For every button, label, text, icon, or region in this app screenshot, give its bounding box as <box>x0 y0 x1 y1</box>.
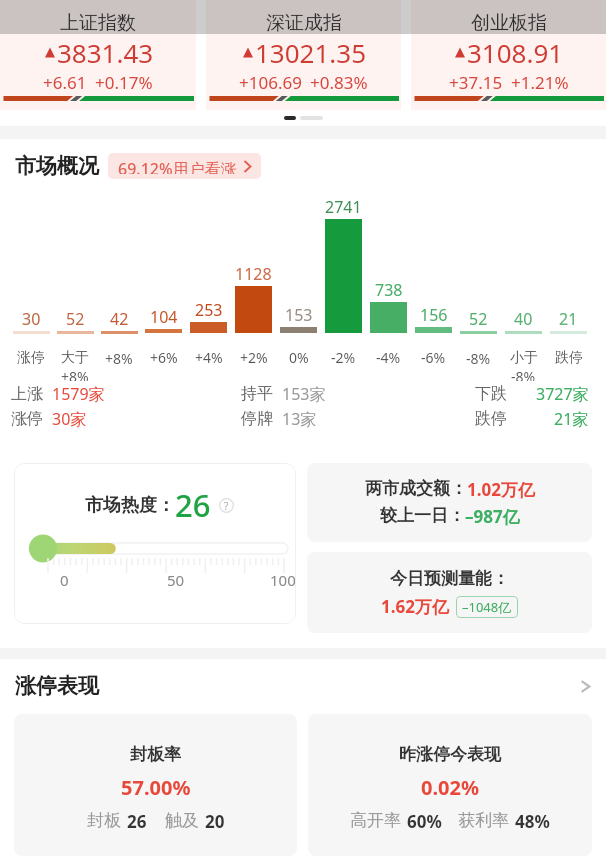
staticText: 153家 <box>282 383 326 405</box>
staticText: 100 <box>270 570 296 590</box>
other: 热度说明 <box>219 498 234 513</box>
staticText: 2741 <box>325 196 362 218</box>
staticText: +0.17% <box>95 71 153 94</box>
staticText: 昨涨停今表现 <box>399 744 501 765</box>
staticText: 深证成指 <box>266 11 342 35</box>
staticText: 涨停 <box>17 349 45 367</box>
button[interactable]: 深证成指 <box>206 0 401 110</box>
button[interactable]: 上证指数 <box>0 0 196 110</box>
button[interactable]: 昨涨停今表现 <box>308 714 592 856</box>
staticText: –987亿 <box>465 505 520 528</box>
staticText: 1.02万亿 <box>467 478 535 501</box>
staticText: 13021.35 <box>255 35 367 70</box>
staticText: –1048亿 <box>462 598 512 616</box>
staticText: 13家 <box>282 408 317 430</box>
staticText: 52 <box>469 308 488 330</box>
staticText: +37.15 <box>449 71 503 94</box>
staticText: +0.83% <box>310 71 368 94</box>
button[interactable]: 今日预测量能： <box>307 552 592 633</box>
staticText: +8% <box>105 349 133 368</box>
staticText: 1579家 <box>52 383 105 405</box>
staticText: 57.00% <box>121 774 191 801</box>
staticText: -4% <box>376 348 401 367</box>
staticText: 20 <box>205 810 225 833</box>
staticText: 3831.43 <box>57 35 154 70</box>
staticText: 大于 <box>61 349 89 367</box>
button[interactable]: 市场热度： <box>14 463 296 624</box>
staticText: -8% <box>511 367 536 381</box>
staticText: 69.12%用户看涨 <box>118 158 237 174</box>
staticText: 60% <box>407 810 442 833</box>
staticText: 两市成交额： <box>365 478 467 499</box>
staticText: 0 <box>60 570 69 590</box>
staticText: 跌停 <box>475 409 507 429</box>
staticText: 获利率 <box>458 810 509 831</box>
staticText: 1128 <box>235 263 272 285</box>
staticText: 市场热度： <box>85 494 175 517</box>
staticText: 涨停 <box>11 409 43 429</box>
staticText: 1.62万亿 <box>381 595 449 618</box>
staticText: +1.21% <box>511 71 569 94</box>
staticText: 738 <box>375 279 403 301</box>
staticText: 3727家 <box>536 383 589 405</box>
staticText: 40 <box>514 308 533 330</box>
staticText: 高开率 <box>350 810 401 831</box>
staticText: 21 <box>559 308 578 330</box>
staticText: 创业板指 <box>471 11 547 35</box>
button[interactable]: 两市成交额： <box>307 463 592 542</box>
staticText: 26 <box>175 484 211 526</box>
staticText: 跌停 <box>555 349 583 367</box>
staticText: 今日预测量能： <box>390 568 509 589</box>
staticText: 48% <box>515 810 550 833</box>
button[interactable]: 封板率 <box>14 714 297 856</box>
button[interactable]: 创业板指 <box>411 0 606 110</box>
button[interactable]: 69.12%用户看涨 <box>108 153 261 179</box>
staticText: +4% <box>195 348 223 367</box>
staticText: +6.61 <box>43 71 87 94</box>
staticText: +2% <box>240 348 268 367</box>
staticText: 3108.91 <box>467 35 564 70</box>
staticText: 上证指数 <box>60 11 136 35</box>
staticText: 156 <box>420 304 448 326</box>
staticText: -8% <box>466 349 491 368</box>
staticText: 下跌 <box>475 384 507 404</box>
staticText: 50 <box>167 570 185 590</box>
staticText: +6% <box>150 348 178 367</box>
button[interactable]: 涨停表现 <box>0 672 606 700</box>
staticText: -6% <box>421 348 446 367</box>
staticText: +8% <box>61 367 89 381</box>
staticText: 26 <box>127 810 147 833</box>
staticText: 触及 <box>165 810 199 831</box>
staticText: 小于 <box>510 349 538 367</box>
staticText: 42 <box>110 308 129 330</box>
staticText: 停牌 <box>241 409 273 429</box>
staticText: 52 <box>66 308 85 330</box>
staticText: 市场概况 <box>15 153 99 179</box>
staticText: -2% <box>331 348 356 367</box>
staticText: 较上一日： <box>380 505 465 526</box>
staticText: +106.69 <box>239 71 302 94</box>
staticText: 253 <box>195 299 223 321</box>
staticText: 涨停表现 <box>15 673 99 699</box>
staticText: 封板率 <box>130 744 181 765</box>
staticText: 30 <box>22 308 41 330</box>
staticText: 21家 <box>554 408 589 430</box>
staticText: 153 <box>285 304 313 326</box>
staticText: 0% <box>289 348 309 367</box>
staticText: 持平 <box>241 384 273 404</box>
staticText: ? <box>224 499 229 513</box>
staticText: 上涨 <box>11 384 43 404</box>
staticText: 104 <box>150 306 178 328</box>
staticText: 0.02% <box>421 774 479 801</box>
staticText: 封板 <box>87 810 121 831</box>
staticText: 30家 <box>52 408 87 430</box>
